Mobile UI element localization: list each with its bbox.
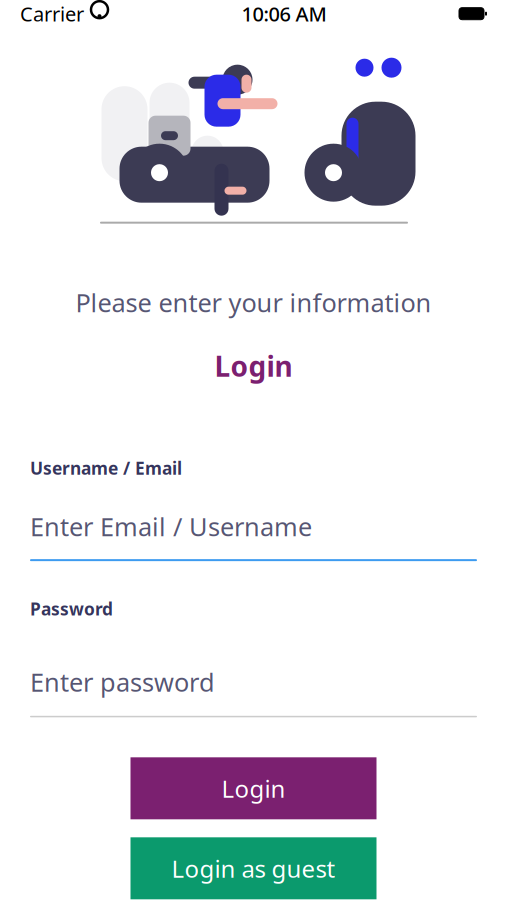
button[interactable]: Login	[130, 757, 376, 819]
staticText: Carrier	[20, 0, 84, 27]
staticText: Please enter your information	[75, 286, 431, 319]
button[interactable]: Login as guest	[130, 837, 376, 899]
staticText: 10:06 AM	[241, 0, 326, 27]
staticText: Login as guest	[171, 852, 335, 884]
staticText: Username / Email	[30, 456, 182, 479]
staticText: Login	[221, 772, 285, 804]
staticText: Enter password	[30, 665, 215, 699]
staticText: Login	[214, 347, 292, 384]
staticText: Enter Email / Username	[30, 509, 312, 543]
staticText: Password	[30, 597, 113, 620]
